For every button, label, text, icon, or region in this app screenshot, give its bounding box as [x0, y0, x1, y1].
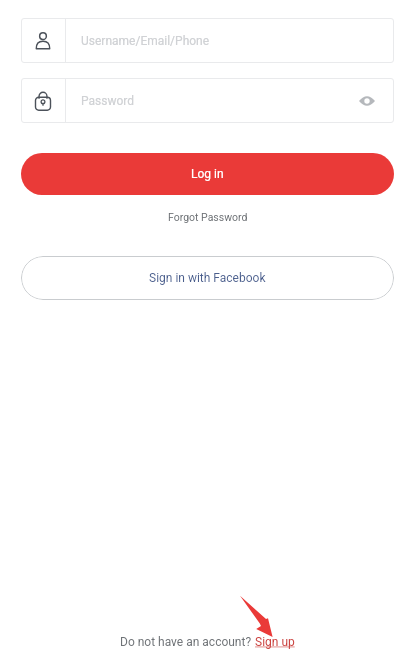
button[interactable]: Sign in with Facebook [21, 256, 394, 300]
button[interactable]: Forgot Password [162, 209, 254, 225]
button[interactable]: Username/Email/Phone [21, 18, 394, 63]
staticText: Log in [191, 167, 224, 181]
staticText: Sign in with Facebook [149, 271, 266, 285]
button[interactable]: Sign up [255, 635, 295, 649]
button[interactable]: Password [21, 78, 394, 123]
staticText: Username/Email/Phone [81, 34, 210, 48]
staticText: Password [81, 94, 135, 108]
button[interactable]: Show password [339, 78, 394, 123]
staticText: Do not have an account? [120, 635, 255, 649]
button[interactable]: Log in [21, 153, 394, 195]
